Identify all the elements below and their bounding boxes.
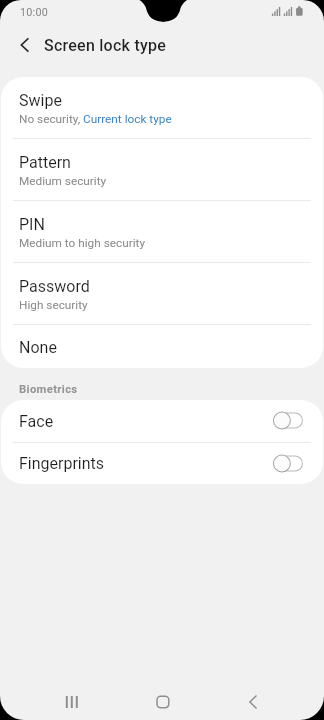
staticText: High security: [19, 298, 88, 312]
staticText: Pattern: [19, 153, 71, 172]
button[interactable]: Home: [147, 687, 177, 717]
button[interactable]: Face: [1, 400, 323, 442]
staticText: Face: [19, 412, 54, 431]
button[interactable]: Password: [1, 263, 323, 324]
button[interactable]: Swipe: [1, 77, 323, 138]
button[interactable]: Fingerprints: [1, 443, 323, 484]
staticText: Password: [19, 277, 90, 296]
button[interactable]: PIN: [1, 201, 323, 262]
button[interactable]: None: [1, 325, 323, 368]
staticText: Fingerprints: [19, 454, 105, 473]
button[interactable]: Pattern: [1, 139, 323, 200]
staticText: Swipe: [19, 91, 62, 110]
staticText: Biometrics: [19, 383, 78, 396]
staticText: Medium security: [19, 174, 107, 188]
staticText: Medium to high security: [19, 236, 145, 250]
staticText: Screen lock type: [44, 36, 167, 55]
staticText: 10:00: [20, 6, 48, 19]
button[interactable]: Recent apps: [57, 687, 87, 717]
staticText: PIN: [19, 215, 45, 234]
staticText: None: [19, 338, 57, 357]
staticText: No security, Current lock type: [19, 112, 172, 126]
button[interactable]: Back: [238, 687, 268, 717]
button[interactable]: Navigate up: [8, 28, 42, 62]
